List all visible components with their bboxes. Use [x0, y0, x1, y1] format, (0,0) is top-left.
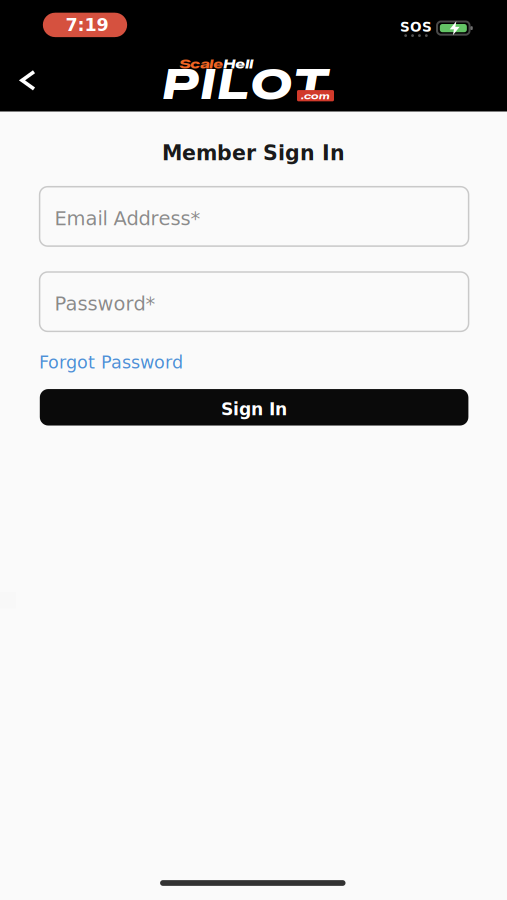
staticText: Member Sign In — [162, 141, 345, 165]
button[interactable]: Email Address — [40, 187, 469, 246]
button[interactable]: Password — [40, 272, 469, 331]
staticText: SOS — [400, 19, 432, 35]
staticText: Heli — [223, 56, 253, 72]
staticText: Scale — [179, 56, 223, 72]
staticText: Forgot Password — [39, 352, 183, 373]
staticText: .com — [301, 90, 330, 102]
staticText: Email Address* — [55, 207, 201, 230]
button[interactable]: Back — [8, 60, 49, 101]
staticText: Sign In — [221, 399, 287, 419]
staticText: Password* — [55, 292, 156, 315]
button[interactable]: Forgot Password — [39, 352, 183, 373]
staticText: PILOT — [163, 59, 328, 109]
button[interactable]: Sign In — [40, 389, 468, 426]
staticText: 7:19 — [65, 15, 108, 35]
